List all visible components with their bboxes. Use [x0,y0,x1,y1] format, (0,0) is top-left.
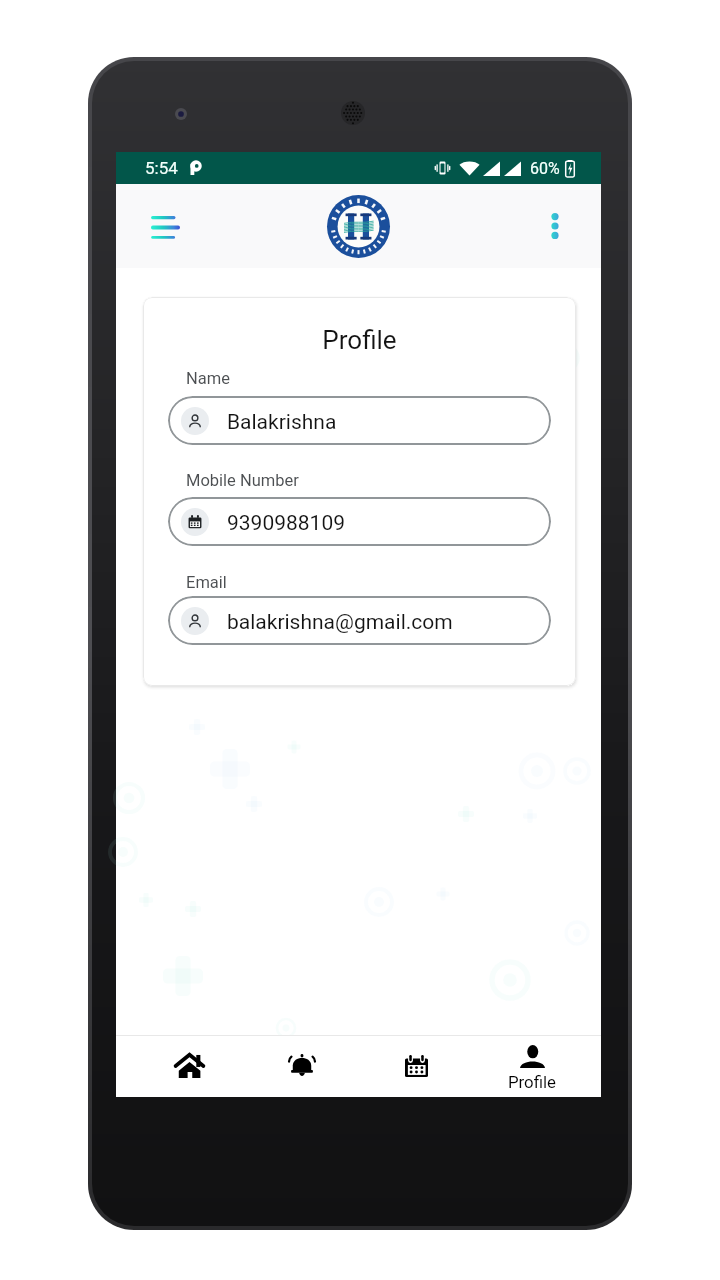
button[interactable]: Open navigation menu [128,204,202,252]
button[interactable]: Profile [492,1036,572,1097]
button[interactable]: Notifications [266,1036,338,1097]
staticText: Profile [143,325,576,355]
staticText: Name [186,369,230,388]
staticText: Profile [508,1072,557,1092]
staticText: Email [186,573,227,592]
button[interactable]: Balakrishna [168,396,551,445]
button[interactable]: balakrishna@gmail.com [168,596,551,645]
button[interactable]: 9390988109 [168,497,551,546]
staticText: 5:54 [145,158,178,178]
staticText: balakrishna@gmail.com [227,610,453,635]
button[interactable]: Home [153,1036,225,1097]
staticText: Balakrishna [227,410,337,435]
staticText: 9390988109 [227,511,346,536]
staticText: 60% [530,159,560,178]
staticText: Mobile Number [186,471,299,490]
button[interactable]: More options [530,202,579,250]
button[interactable]: Calendar [380,1036,452,1097]
